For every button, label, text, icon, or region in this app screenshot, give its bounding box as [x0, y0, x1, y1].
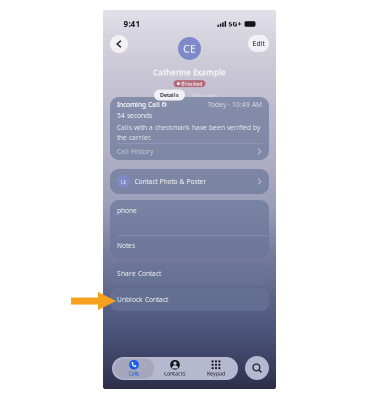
button[interactable]: CE [110, 169, 269, 194]
button[interactable]: Calls [113, 358, 154, 378]
staticText: Call History [117, 147, 153, 156]
staticText: Messages [192, 91, 218, 99]
staticText: phone [117, 206, 137, 215]
staticText: Contacts [164, 370, 186, 377]
button[interactable]: Edit [248, 35, 269, 52]
button[interactable]: Details [154, 89, 185, 100]
staticText: CE [183, 41, 196, 56]
button[interactable]: Back [110, 35, 128, 53]
staticText: Catherine Example [153, 67, 226, 78]
staticText: Unblock Contact [117, 295, 168, 304]
staticText: Details [160, 91, 179, 99]
staticText: Edit [252, 39, 264, 48]
button[interactable]: Keypad [195, 358, 236, 378]
button[interactable]: Search [245, 356, 269, 380]
staticText: 5G+ [228, 20, 241, 28]
staticText: Incoming Call [117, 100, 160, 109]
button[interactable]: Call History [110, 143, 269, 160]
staticText: Calls with a checkmark have been verifie… [117, 123, 260, 132]
button[interactable]: Share Contact [110, 262, 269, 285]
staticText: the carrier. [117, 133, 152, 142]
button[interactable]: Unblock Contact [110, 288, 269, 311]
button[interactable]: Contacts [154, 358, 195, 378]
staticText: Today · 10:49 AM [208, 100, 262, 109]
button[interactable]: phone [110, 200, 269, 235]
staticText: CE [120, 178, 126, 185]
staticText: Notes [117, 241, 135, 250]
staticText: Calls [128, 370, 139, 377]
button[interactable]: Notes [110, 235, 269, 264]
staticText: 54 seconds [117, 111, 152, 120]
staticText: Blocked [181, 80, 202, 87]
staticText: Keypad [207, 370, 225, 377]
staticText: Contact Photo & Poster [134, 177, 206, 186]
staticText: 9:41 [123, 19, 140, 29]
staticText: Share Contact [117, 269, 161, 278]
button[interactable]: Messages [185, 89, 225, 100]
